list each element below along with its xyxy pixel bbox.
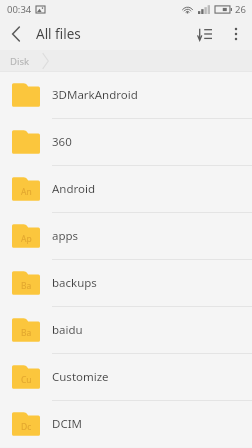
staticText: apps [52,228,79,244]
staticText: 3DMarkAndroid [52,87,138,103]
button[interactable]: Back [0,18,32,50]
staticText: Ba [21,280,32,292]
button[interactable]: Ap [0,213,252,259]
button[interactable]: Sort [188,18,220,50]
staticText: Ap [21,233,32,245]
button[interactable]: More options [220,18,252,50]
button[interactable]: 3DMarkAndroid [0,72,252,118]
staticText: baidu [52,322,83,338]
staticText: Cu [21,374,32,386]
staticText: 26 [235,3,246,16]
button[interactable]: Ba [0,307,252,353]
button[interactable]: Disk [10,52,49,70]
staticText: backups [52,275,97,291]
button[interactable]: Ba [0,260,252,306]
staticText: Android [52,181,96,197]
button[interactable]: Dc [0,401,252,447]
staticText: DCIM [52,416,82,432]
staticText: All files [36,25,81,43]
staticText: Disk [10,55,30,68]
button[interactable]: An [0,166,252,212]
staticText: Dc [21,421,32,433]
staticText: Ba [21,327,32,339]
button[interactable]: 360 [0,119,252,165]
staticText: An [21,186,32,198]
staticText: 360 [52,134,72,150]
staticText: 00:34 [7,3,32,16]
staticText: Customize [52,369,109,385]
button[interactable]: Cu [0,354,252,400]
